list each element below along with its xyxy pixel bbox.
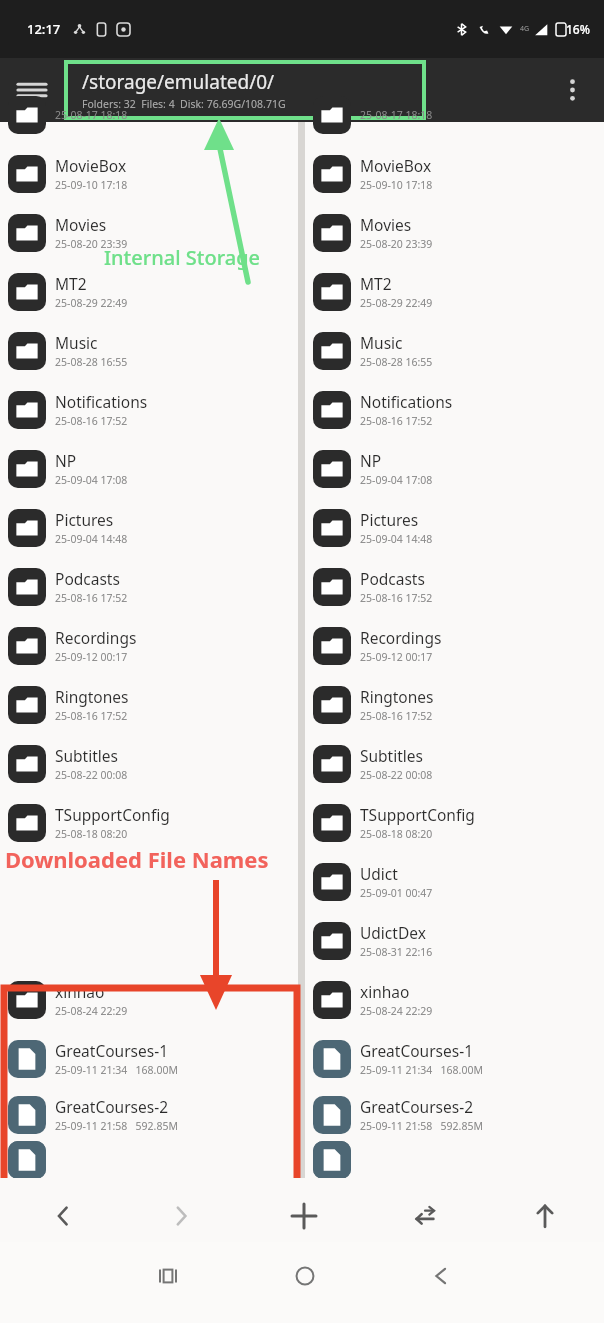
button[interactable]: xinhao bbox=[305, 970, 604, 1029]
staticText: 25-08-28 16:55 bbox=[360, 355, 433, 369]
staticText: 25-08-22 00:08 bbox=[55, 768, 128, 782]
button[interactable]: TSupportConfig bbox=[0, 793, 298, 852]
staticText: 25-08-20 23:39 bbox=[360, 237, 433, 251]
button[interactable]: More options bbox=[554, 72, 590, 108]
staticText: 25-08-24 22:29 bbox=[55, 1004, 128, 1018]
button[interactable]: Music bbox=[0, 321, 298, 380]
button[interactable]: Recordings bbox=[0, 616, 298, 675]
staticText: 25-08-18 08:20 bbox=[55, 827, 128, 841]
button[interactable]: Udict bbox=[305, 852, 604, 911]
staticText: MT2 bbox=[360, 273, 392, 294]
staticText: 25-08-16 17:52 bbox=[55, 709, 128, 723]
staticText: 4G bbox=[520, 24, 530, 34]
staticText: Notifications bbox=[360, 391, 453, 412]
button[interactable]: Home bbox=[277, 1248, 333, 1304]
button[interactable]: 25-08-17 18:18 bbox=[0, 85, 298, 144]
button[interactable]: UdictDex bbox=[305, 911, 604, 970]
staticText: Subtitles bbox=[55, 745, 118, 766]
button[interactable]: Pictures bbox=[305, 498, 604, 557]
button[interactable]: Paste bbox=[397, 1188, 453, 1244]
staticText: 25-09-10 17:18 bbox=[360, 178, 433, 192]
staticText: TSupportConfig bbox=[55, 804, 170, 825]
button[interactable]: 25-08-17 18:18 bbox=[305, 85, 604, 144]
staticText: 25-08-22 00:08 bbox=[360, 768, 433, 782]
staticText: 25-08-16 17:52 bbox=[360, 591, 433, 605]
staticText: 25-08-17 18:18 bbox=[55, 108, 128, 122]
button[interactable]: Back bbox=[35, 1188, 91, 1244]
button[interactable]: Podcasts bbox=[0, 557, 298, 616]
staticText: UdictDex bbox=[360, 922, 426, 943]
staticText: GreatCourses-2 bbox=[55, 1096, 169, 1117]
button[interactable]: Forward bbox=[153, 1188, 209, 1244]
staticText: 25-08-16 17:52 bbox=[55, 414, 128, 428]
staticText: 25-09-10 17:18 bbox=[55, 178, 128, 192]
button[interactable]: Recordings bbox=[305, 616, 604, 675]
staticText: 25-09-04 17:08 bbox=[360, 473, 433, 487]
staticText: TSupportConfig bbox=[360, 804, 475, 825]
staticText: GreatCourses-2 bbox=[360, 1096, 474, 1117]
button[interactable]: MT2 bbox=[305, 262, 604, 321]
staticText: /storage/emulated/0/ bbox=[82, 69, 275, 95]
staticText: MT2 bbox=[55, 273, 87, 294]
button[interactable]: Subtitles bbox=[305, 734, 604, 793]
staticText: GreatCourses-1 bbox=[360, 1040, 474, 1061]
button[interactable]: GreatCourses-1 bbox=[0, 1029, 298, 1088]
button[interactable]: Ringtones bbox=[0, 675, 298, 734]
button[interactable]: TSupportConfig bbox=[305, 793, 604, 852]
staticText: 25-09-11 21:34 168.00M bbox=[55, 1063, 178, 1077]
staticText: 25-09-12 00:17 bbox=[360, 650, 433, 664]
button[interactable]: NP bbox=[305, 439, 604, 498]
staticText: Ringtones bbox=[360, 686, 434, 707]
staticText: 25-08-18 08:20 bbox=[360, 827, 433, 841]
button[interactable]: GreatCourses-2 bbox=[305, 1088, 604, 1141]
staticText: Folders: 32 Files: 4 Disk: 76.69G/108.71… bbox=[82, 97, 286, 111]
staticText: Ringtones bbox=[55, 686, 129, 707]
button[interactable]: Podcasts bbox=[305, 557, 604, 616]
staticText: MovieBox bbox=[360, 155, 432, 176]
button[interactable]: GreatCourses-1 bbox=[305, 1029, 604, 1088]
staticText: 25-08-31 22:16 bbox=[360, 945, 433, 959]
button[interactable]: MovieBox bbox=[0, 144, 298, 203]
button[interactable]: MT2 bbox=[0, 262, 298, 321]
button[interactable]: Recents bbox=[140, 1248, 196, 1304]
staticText: xinhao bbox=[55, 981, 105, 1002]
staticText: 25-09-04 17:08 bbox=[55, 473, 128, 487]
staticText: 25-08-17 18:18 bbox=[360, 108, 433, 122]
button[interactable]: Movies bbox=[0, 203, 298, 262]
button[interactable]: /storage/emulated/0/ bbox=[66, 62, 424, 118]
staticText: 25-08-28 16:55 bbox=[55, 355, 128, 369]
staticText: NP bbox=[55, 450, 77, 471]
staticText: 25-08-24 22:29 bbox=[360, 1004, 433, 1018]
staticText: Pictures bbox=[55, 509, 114, 530]
staticText: Recordings bbox=[360, 627, 442, 648]
button[interactable]: Notifications bbox=[305, 380, 604, 439]
button[interactable]: Movies bbox=[305, 203, 604, 262]
button[interactable]: Menu bbox=[14, 72, 50, 108]
button[interactable]: Pictures bbox=[0, 498, 298, 557]
button[interactable]: GreatCourses-2 bbox=[0, 1088, 298, 1141]
staticText: Notifications bbox=[55, 391, 148, 412]
staticText: Downloaded File Names bbox=[5, 844, 269, 874]
button[interactable]: Up bbox=[517, 1188, 573, 1244]
button[interactable]: MovieBox bbox=[305, 144, 604, 203]
staticText: 25-08-29 22:49 bbox=[55, 296, 128, 310]
staticText: 25-09-11 21:58 592.85M bbox=[55, 1119, 178, 1133]
staticText: 25-09-11 21:58 592.85M bbox=[360, 1119, 483, 1133]
button[interactable]: Back bbox=[412, 1248, 468, 1304]
staticText: 16% bbox=[566, 21, 590, 37]
button[interactable]: Notifications bbox=[0, 380, 298, 439]
staticText: 25-09-04 14:48 bbox=[360, 532, 433, 546]
staticText: Recordings bbox=[55, 627, 137, 648]
staticText: 25-08-20 23:39 bbox=[55, 237, 128, 251]
staticText: Udict bbox=[360, 863, 398, 884]
staticText: 25-09-11 21:34 168.00M bbox=[360, 1063, 483, 1077]
button[interactable]: NP bbox=[0, 439, 298, 498]
button[interactable]: xinhao bbox=[0, 970, 298, 1029]
staticText: Podcasts bbox=[360, 568, 425, 589]
staticText: Movies bbox=[360, 214, 412, 235]
button[interactable]: Music bbox=[305, 321, 604, 380]
button[interactable]: New bbox=[276, 1188, 332, 1244]
staticText: MovieBox bbox=[55, 155, 127, 176]
button[interactable]: Subtitles bbox=[0, 734, 298, 793]
button[interactable]: Ringtones bbox=[305, 675, 604, 734]
